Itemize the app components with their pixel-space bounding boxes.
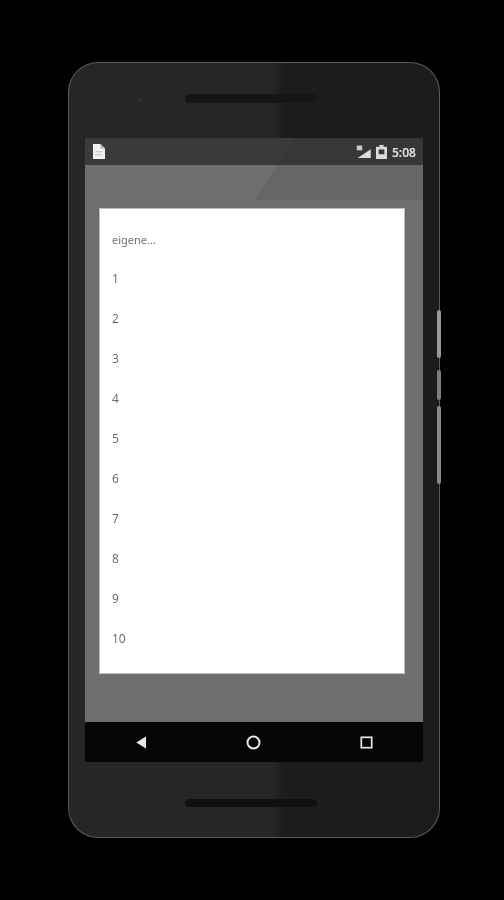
staticText: eigene... — [112, 232, 156, 247]
button[interactable]: Back — [85, 722, 197, 762]
button[interactable]: 10 — [100, 630, 404, 670]
staticText: 3 — [112, 350, 119, 366]
staticText: 8 — [112, 550, 119, 566]
button[interactable]: 2 — [100, 310, 404, 350]
staticText: 5:08 — [392, 144, 416, 160]
button[interactable]: 4 — [100, 390, 404, 430]
staticText: 5 — [112, 430, 119, 446]
staticText: 6 — [112, 470, 119, 486]
staticText: 2 — [112, 310, 119, 326]
staticText: 10 — [112, 630, 126, 646]
staticText: 7 — [112, 510, 119, 526]
button[interactable]: Home — [197, 722, 310, 762]
staticText: 1 — [112, 270, 119, 286]
button[interactable]: 7 — [100, 510, 404, 550]
button[interactable]: 9 — [100, 590, 404, 630]
button[interactable]: Recent apps — [310, 722, 423, 762]
button[interactable]: 6 — [100, 470, 404, 510]
button[interactable]: 8 — [100, 550, 404, 590]
button[interactable]: 5 — [100, 430, 404, 470]
button[interactable]: 3 — [100, 350, 404, 390]
button[interactable]: 1 — [100, 270, 404, 310]
staticText: 9 — [112, 590, 119, 606]
button[interactable]: eigene... — [100, 230, 404, 248]
staticText: 4 — [112, 390, 119, 406]
